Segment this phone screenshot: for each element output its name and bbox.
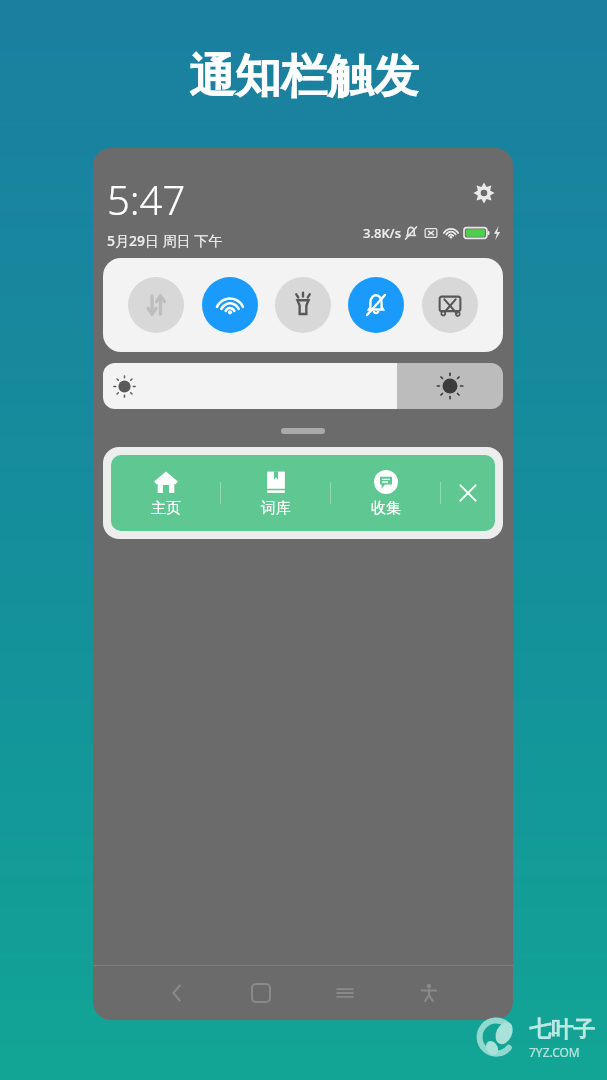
staticText: 5:47	[107, 172, 186, 226]
button[interactable]: Mobile data	[128, 277, 184, 333]
button[interactable]: Settings	[469, 178, 499, 208]
button[interactable]: Back	[155, 971, 199, 1015]
staticText: 5月29日 周日 下午	[107, 231, 223, 250]
button[interactable]: 收集	[331, 455, 440, 531]
button[interactable]: Screenshot	[422, 277, 478, 333]
button[interactable]: Recents	[323, 971, 367, 1015]
button[interactable]: Close	[441, 455, 495, 531]
staticText: 7YZ.COM	[529, 1044, 580, 1060]
staticText: 词库	[261, 499, 291, 518]
staticText: 3.8K/s	[363, 224, 401, 242]
button[interactable]: 词库	[221, 455, 330, 531]
button[interactable]: Home	[239, 971, 283, 1015]
button[interactable]: Brightness	[103, 363, 503, 409]
staticText: 七叶子	[529, 1016, 595, 1044]
staticText: 主页	[151, 499, 181, 518]
button[interactable]: Wi-Fi	[202, 277, 258, 333]
button[interactable]: Silent mode	[348, 277, 404, 333]
staticText: 收集	[371, 499, 401, 518]
button[interactable]: Accessibility	[407, 971, 451, 1015]
staticText: 通知栏触发	[189, 48, 419, 106]
button[interactable]: 主页	[111, 455, 220, 531]
button[interactable]: Flashlight	[275, 277, 331, 333]
